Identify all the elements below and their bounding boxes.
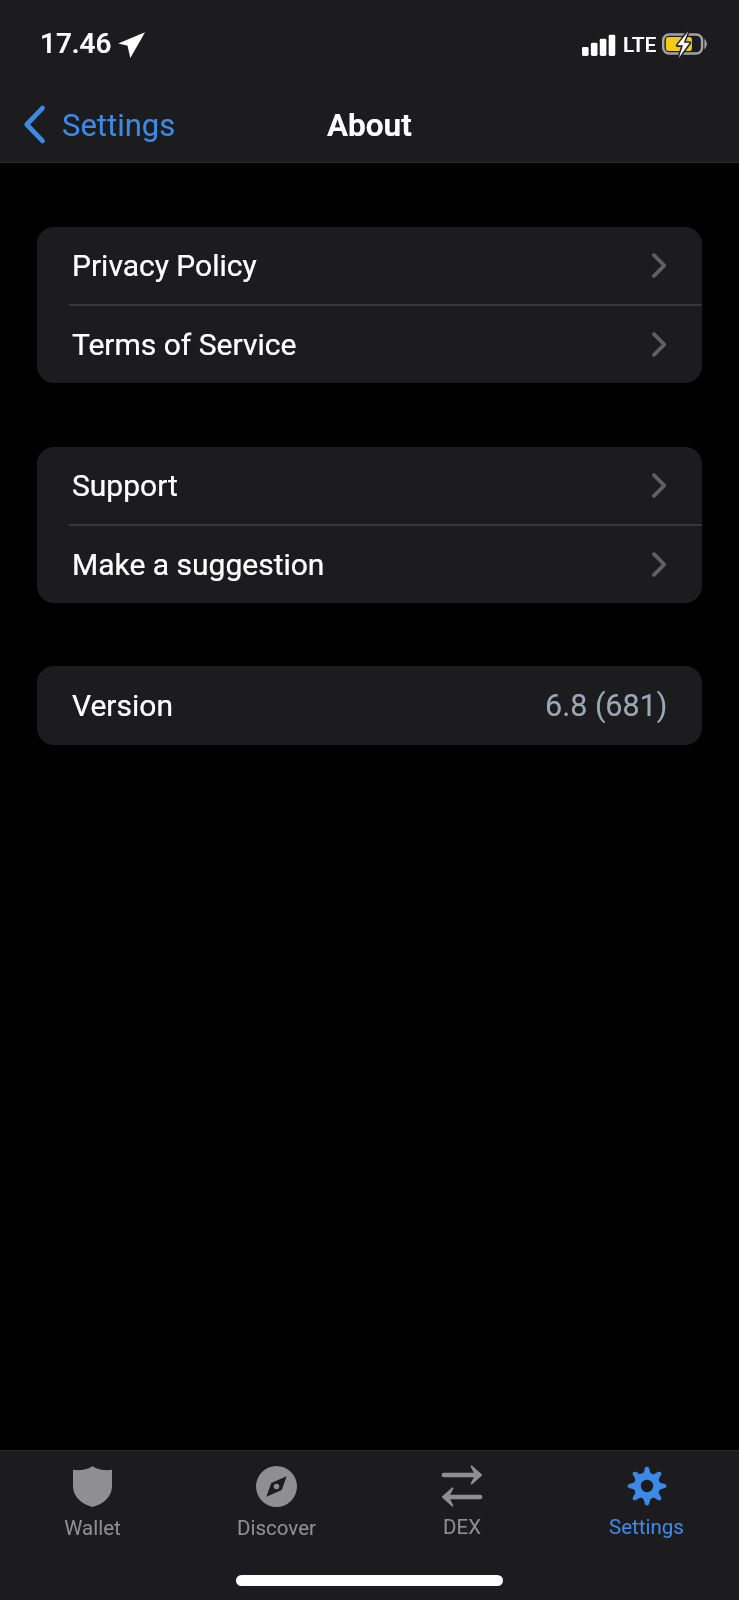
staticText: 17.46 (40, 27, 112, 60)
button[interactable]: Discover (184, 1451, 369, 1550)
staticText: DEX (443, 1515, 481, 1539)
button[interactable]: Support (37, 447, 702, 524)
button[interactable]: Make a suggestion (37, 526, 702, 603)
other: Settings (627, 1466, 667, 1506)
staticText: Make a suggestion (72, 547, 325, 582)
staticText: Discover (237, 1516, 316, 1540)
staticText: Settings (62, 107, 176, 143)
staticText: LTE (623, 33, 657, 58)
button[interactable]: DEX (369, 1451, 554, 1550)
staticText: Wallet (64, 1516, 121, 1540)
button[interactable]: Wallet (0, 1451, 184, 1550)
button[interactable]: Settings (554, 1451, 739, 1550)
staticText: 6.8 (681) (545, 688, 668, 724)
other: Wallet (73, 1466, 112, 1507)
staticText: Version (72, 688, 173, 723)
button[interactable]: Terms of Service (37, 306, 702, 383)
staticText: Terms of Service (72, 327, 297, 362)
staticText: About (327, 107, 412, 144)
staticText: Settings (609, 1515, 684, 1539)
other: DEX (443, 1466, 481, 1506)
other: Discover (256, 1466, 297, 1507)
button[interactable]: Settings (10, 95, 192, 162)
button[interactable]: Privacy Policy (37, 227, 702, 304)
staticText: Privacy Policy (72, 248, 257, 283)
staticText: Support (72, 468, 178, 503)
